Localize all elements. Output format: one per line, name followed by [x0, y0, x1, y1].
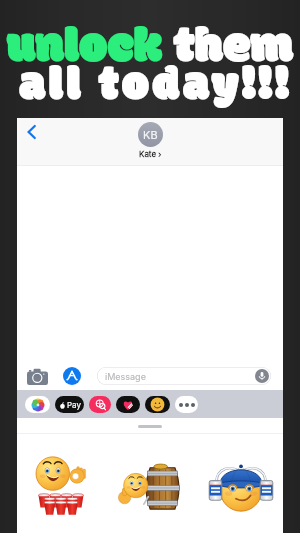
staticText: iMessage	[105, 371, 146, 382]
button[interactable]: More	[175, 396, 198, 413]
staticText: all today!!!	[19, 50, 292, 124]
button[interactable]: Photos	[25, 396, 50, 413]
button[interactable]: Images	[89, 396, 111, 413]
staticText: unlock	[7, 10, 173, 87]
button[interactable]: iMessage	[97, 367, 271, 385]
button[interactable]: KB	[138, 122, 163, 159]
button[interactable]: Beer pong sticker	[36, 455, 86, 516]
button[interactable]: App Store	[63, 367, 81, 385]
button[interactable]: Beer keg sticker	[116, 463, 182, 511]
button[interactable]: Beer hat sticker	[207, 462, 275, 511]
button[interactable]: Camera	[27, 368, 48, 385]
button[interactable]: Voice message	[255, 369, 269, 383]
button[interactable]: Apple Pay	[55, 396, 84, 413]
staticText: Kate ›	[139, 149, 162, 159]
staticText: KB	[143, 128, 158, 141]
staticText: Pay	[67, 400, 81, 410]
button[interactable]: Digital Touch	[116, 396, 140, 413]
staticText: them	[173, 10, 293, 87]
button[interactable]: Back	[21, 122, 41, 142]
button[interactable]: Emoji	[145, 396, 170, 413]
